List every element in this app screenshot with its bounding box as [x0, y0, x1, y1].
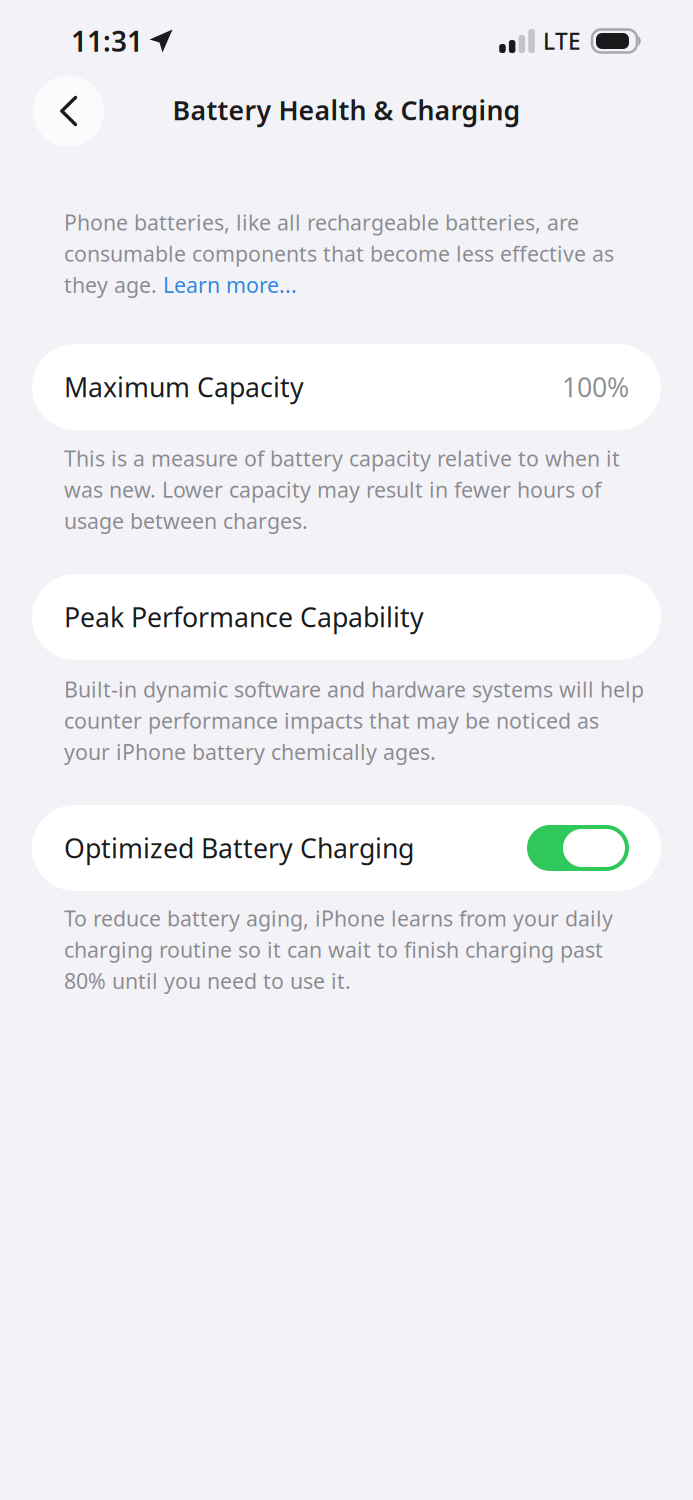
button[interactable]: Maximum Capacity — [0, 344, 693, 430]
staticText: Optimized Battery Charging — [64, 830, 414, 866]
staticText: Built-in dynamic software and hardware s… — [64, 675, 644, 766]
button[interactable]: Back — [33, 75, 104, 146]
staticText: LTE — [543, 26, 581, 56]
staticText: 11:31 — [71, 22, 143, 60]
staticText: This is a measure of battery capacity re… — [64, 444, 620, 535]
staticText: Phone batteries, like all rechargeable b… — [64, 208, 614, 299]
staticText: Battery Health & Charging — [172, 92, 520, 128]
staticText: To reduce battery aging, iPhone learns f… — [64, 904, 613, 995]
staticText: Maximum Capacity — [64, 369, 304, 405]
staticText: 100% — [562, 369, 629, 405]
staticText: Peak Performance Capability — [64, 599, 424, 635]
button[interactable]: Peak Performance Capability — [0, 574, 693, 660]
button[interactable]: Optimized Battery Charging — [0, 805, 693, 891]
